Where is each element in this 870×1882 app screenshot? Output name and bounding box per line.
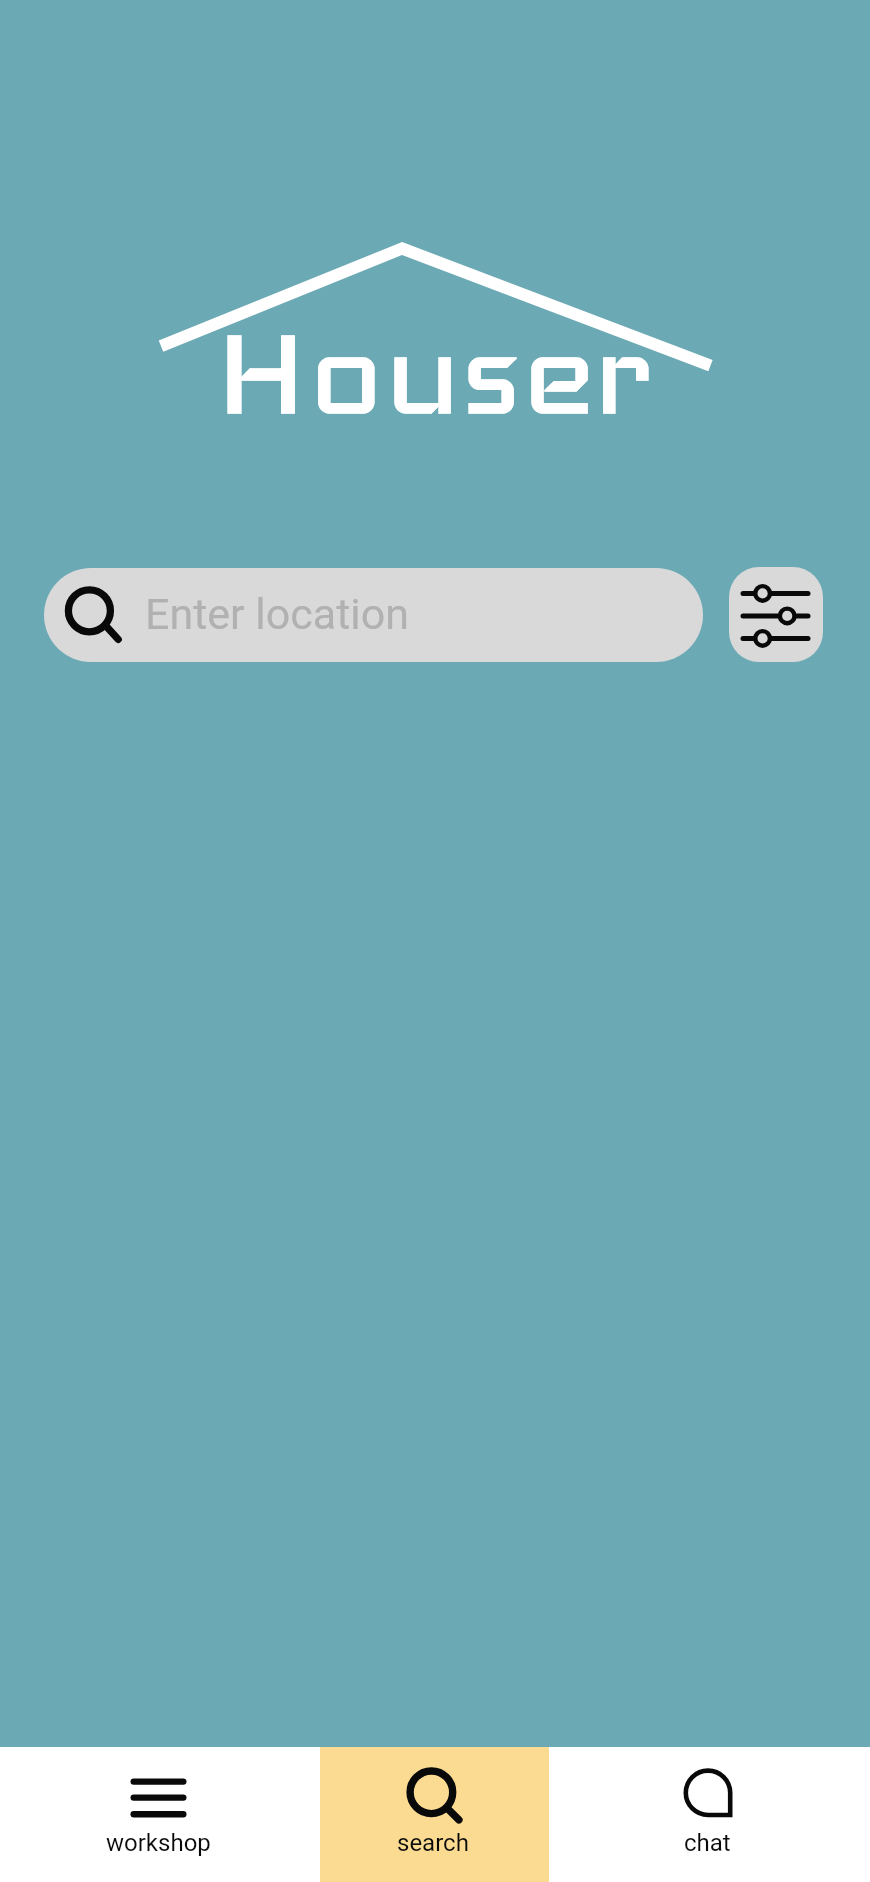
button[interactable]: workshop	[0, 1747, 320, 1882]
staticText: Houser	[214, 295, 654, 448]
staticText: workshop	[106, 1829, 211, 1857]
button[interactable]: Filters	[729, 567, 823, 662]
button[interactable]: search	[320, 1747, 549, 1882]
button[interactable]: Enter location	[44, 568, 703, 662]
staticText: Enter location	[145, 589, 409, 639]
staticText: search	[397, 1829, 469, 1857]
staticText: chat	[684, 1829, 731, 1857]
button[interactable]: chat	[549, 1747, 870, 1882]
staticText: Houser	[214, 295, 654, 448]
